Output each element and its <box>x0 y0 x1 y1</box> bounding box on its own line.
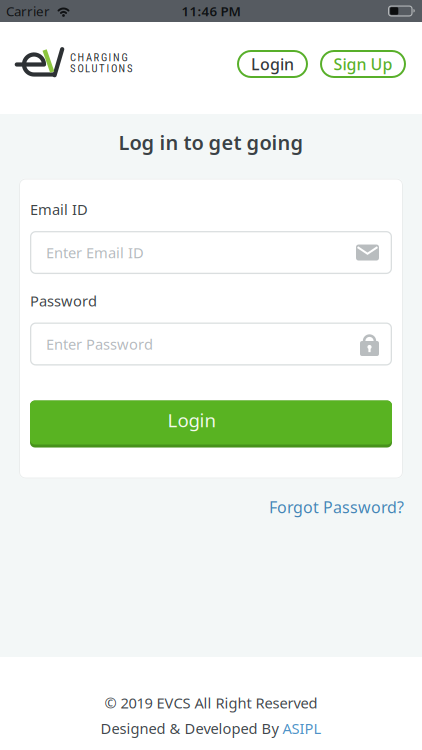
button[interactable]: Login <box>30 400 392 447</box>
staticText: Login <box>167 407 216 432</box>
staticText: Sign Up <box>333 53 392 75</box>
button[interactable]: Forgot Password? <box>269 496 404 518</box>
button[interactable]: Enter Email ID <box>30 231 392 274</box>
staticText: © 2019 EVCS All Right Reserved <box>104 693 317 712</box>
staticText: Email ID <box>30 200 88 219</box>
staticText: Carrier <box>6 2 50 20</box>
staticText: Log in to get going <box>118 129 303 156</box>
button[interactable]: Sign Up <box>320 50 406 78</box>
staticText: Enter Password <box>46 334 153 354</box>
staticText: 11:46 PM <box>181 2 240 20</box>
staticText: Login <box>251 53 294 75</box>
button[interactable]: ASIPL <box>282 718 321 738</box>
staticText: Forgot Password? <box>269 496 404 518</box>
button[interactable]: Enter Password <box>30 322 392 365</box>
staticText: SOLUTIONS <box>70 62 133 75</box>
button[interactable]: Login <box>237 50 308 78</box>
staticText: Designed & Developed By <box>100 718 282 738</box>
staticText: Enter Email ID <box>46 243 144 262</box>
staticText: ASIPL <box>282 718 321 738</box>
staticText: CHARGING <box>70 51 127 64</box>
staticText: Password <box>30 291 97 310</box>
